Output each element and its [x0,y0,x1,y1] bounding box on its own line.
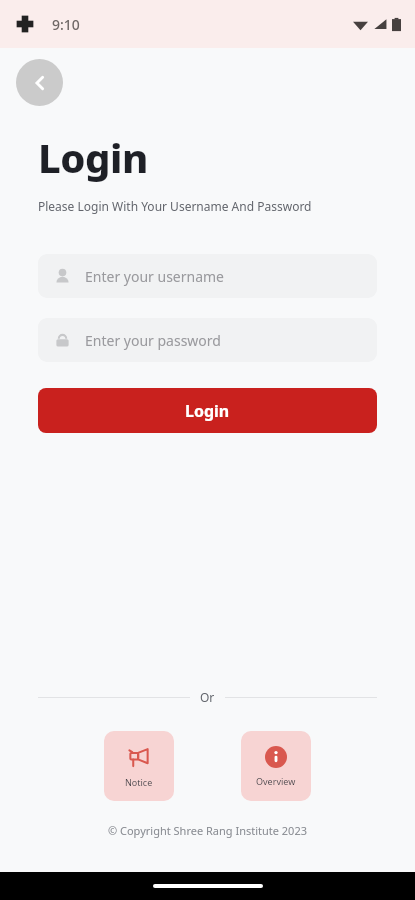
staticText: Login [38,130,148,184]
button[interactable]: Login [38,388,377,433]
staticText: Enter your password [85,331,221,350]
staticText: Login [185,400,230,422]
staticText: 9:10 [52,15,80,34]
button[interactable]: Enter your username [38,254,377,298]
staticText: Enter your username [85,267,225,286]
staticText: Please Login With Your Username And Pass… [38,198,312,214]
button[interactable]: Back [16,59,63,106]
staticText: Overview [256,775,296,787]
button[interactable]: Overview [241,731,311,801]
staticText: Or [200,689,215,705]
button[interactable]: Enter your password [38,318,377,362]
staticText: © Copyright Shree Rang Institute 2023 [0,823,415,838]
button[interactable]: Notice [104,731,174,801]
staticText: Notice [125,776,153,788]
